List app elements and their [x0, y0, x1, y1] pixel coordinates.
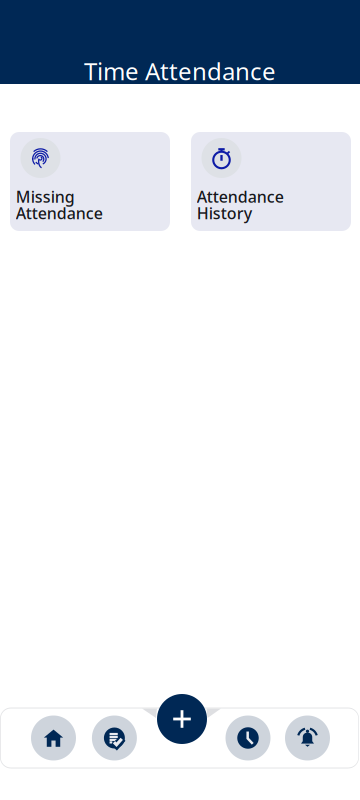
- staticText: History: [197, 202, 252, 224]
- button[interactable]: Attendance: [191, 132, 351, 231]
- button[interactable]: Time: [225, 715, 270, 760]
- button[interactable]: Home: [31, 715, 76, 760]
- button[interactable]: Missing: [10, 132, 170, 231]
- button[interactable]: Notifications: [285, 715, 330, 760]
- staticText: Missing: [16, 186, 75, 207]
- staticText: Attendance: [16, 202, 103, 224]
- staticText: Attendance: [197, 186, 284, 207]
- button[interactable]: Requests: [92, 715, 137, 760]
- button[interactable]: Add: [157, 694, 207, 744]
- staticText: Time Attendance: [84, 55, 276, 87]
